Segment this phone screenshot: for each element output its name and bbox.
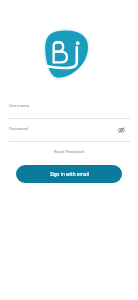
button[interactable]: Sign in with email [16, 165, 122, 183]
button[interactable]: Reset Password [0, 149, 138, 155]
staticText: Username [9, 103, 30, 109]
staticText: Sign in with email [50, 171, 89, 177]
staticText: Password [9, 126, 28, 132]
button[interactable]: Toggle password visibility [117, 126, 126, 135]
